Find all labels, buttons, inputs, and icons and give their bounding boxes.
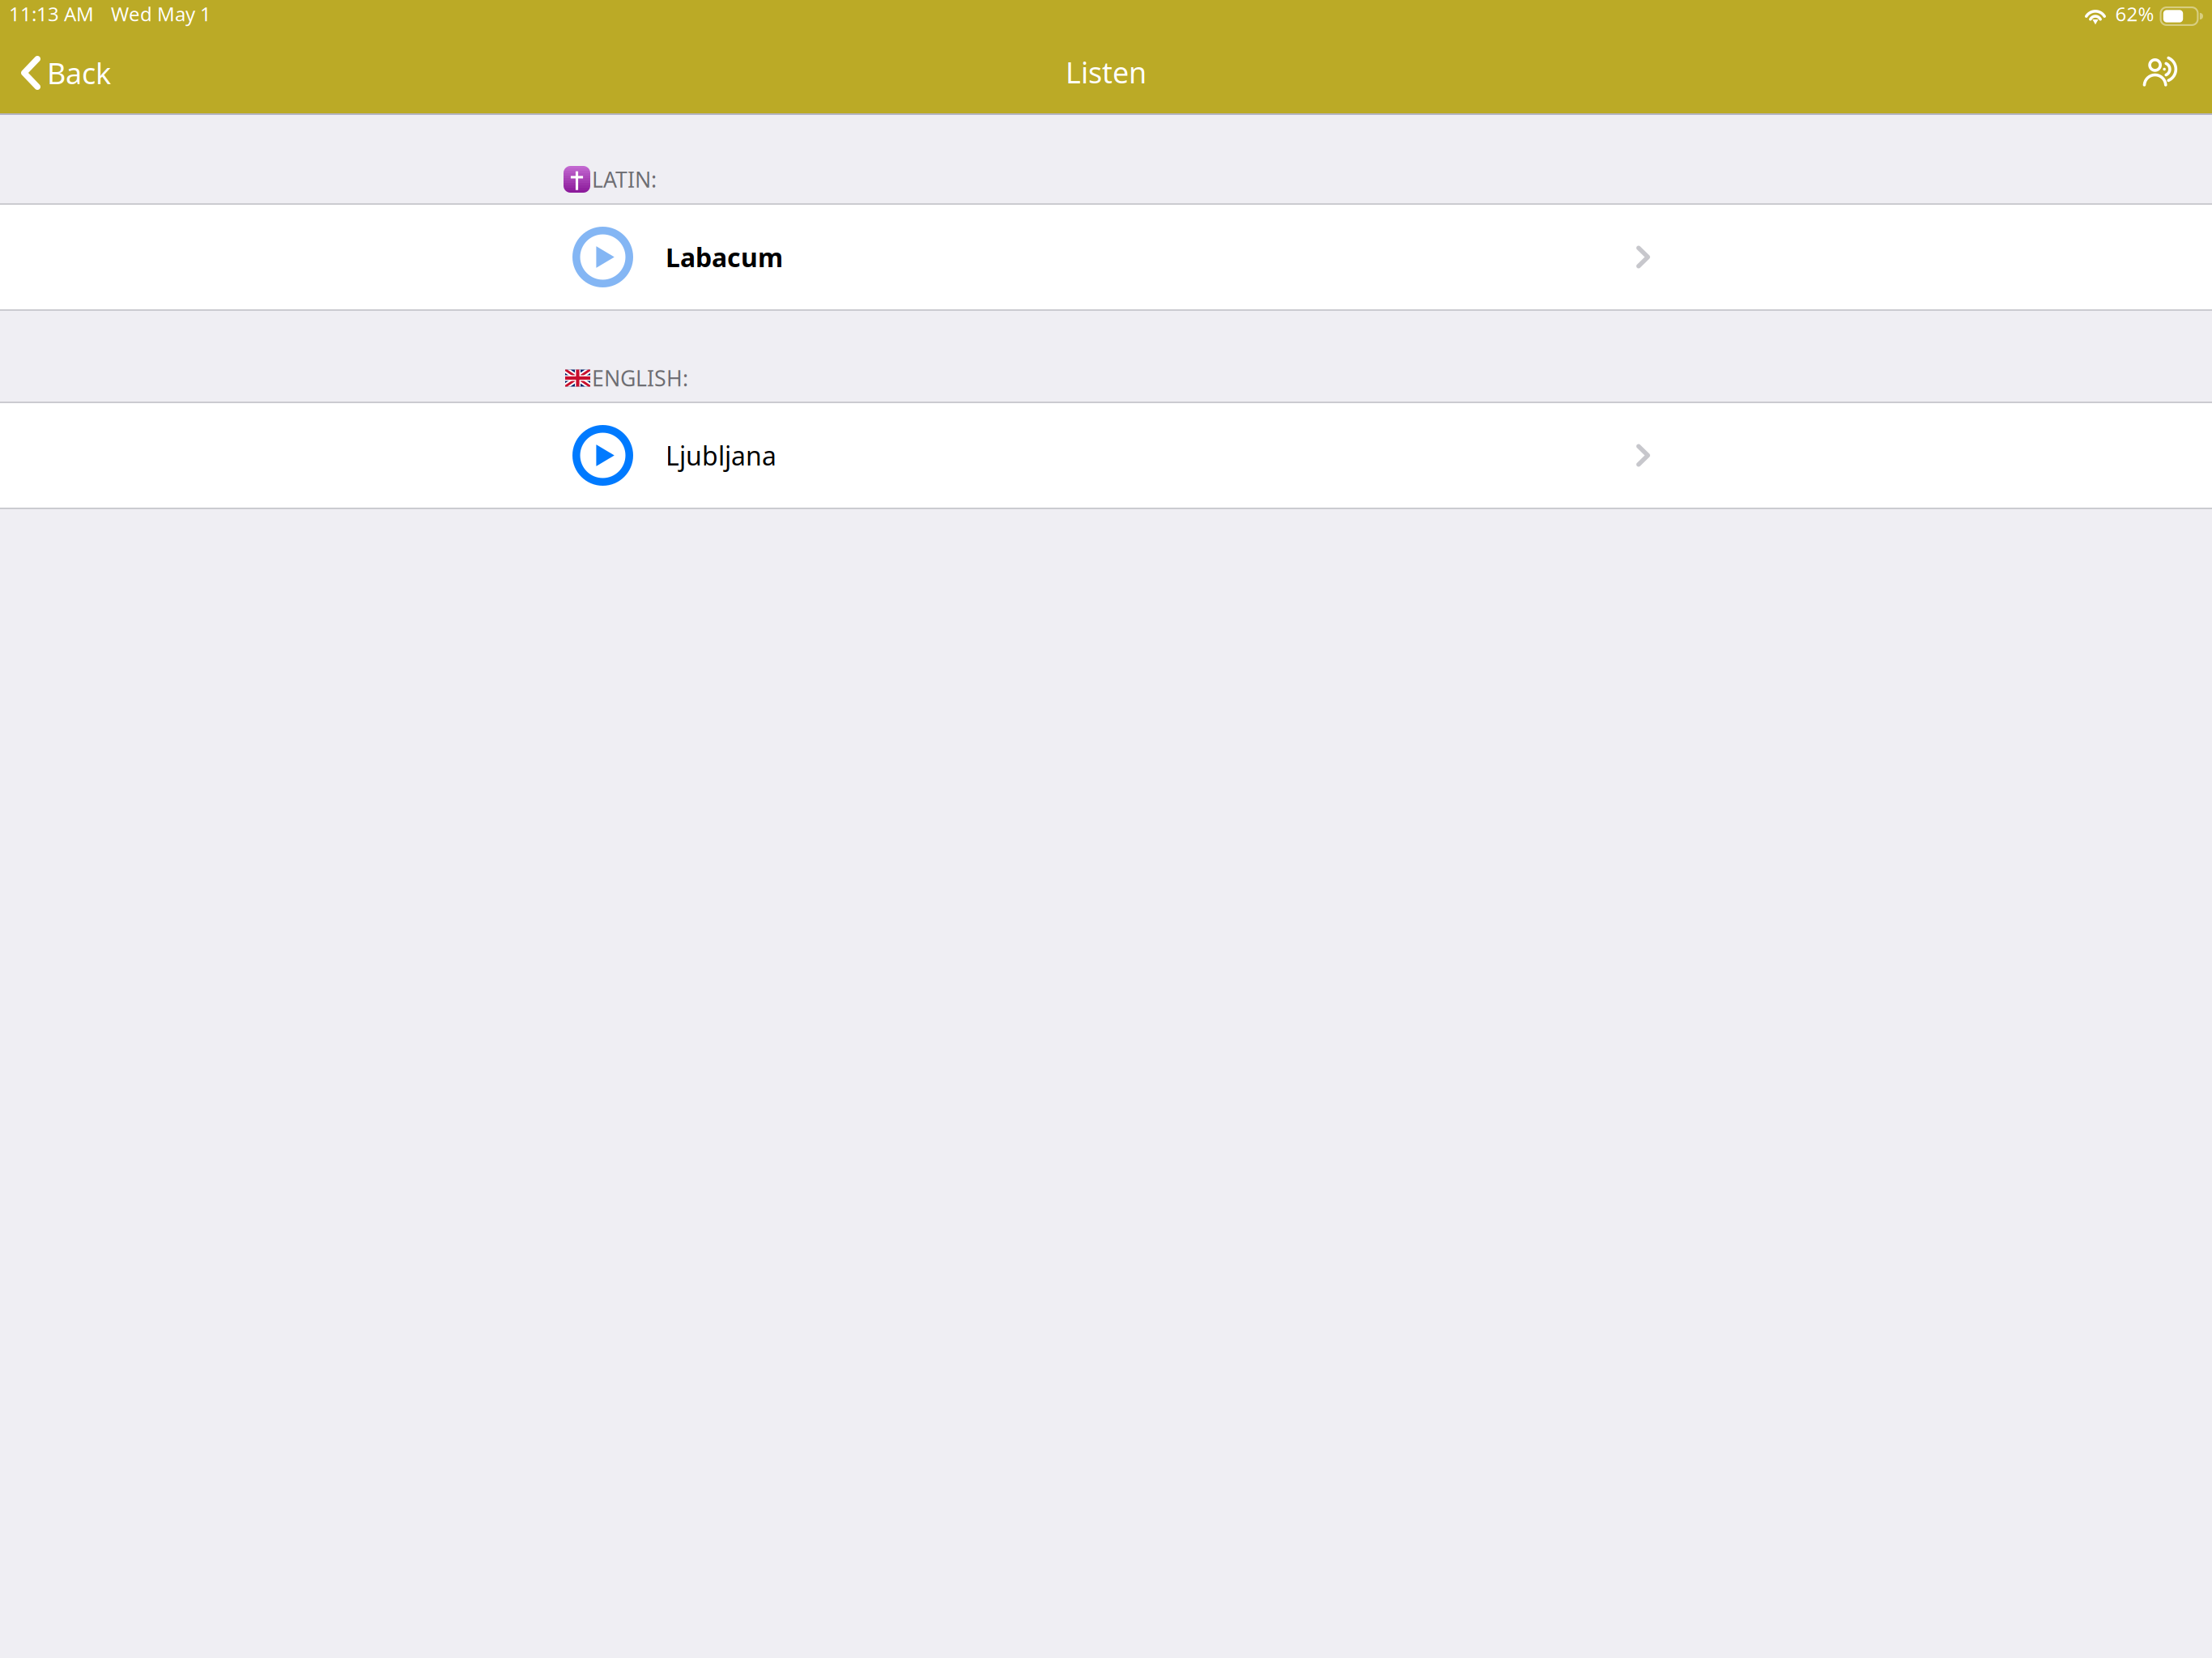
button[interactable]: Labacum bbox=[0, 205, 2212, 309]
button[interactable]: Speaker settings bbox=[2126, 50, 2212, 96]
staticText: LATIN: bbox=[592, 165, 657, 194]
staticText: Ljubljana bbox=[666, 438, 776, 473]
button[interactable]: Play Labacum bbox=[572, 227, 633, 287]
staticText: 62% bbox=[2115, 1, 2154, 27]
button[interactable]: Ljubljana bbox=[0, 403, 2212, 508]
staticText: ENGLISH: bbox=[592, 364, 688, 392]
staticText: Labacum bbox=[666, 240, 783, 274]
staticText: Wed May 1 bbox=[111, 1, 211, 27]
button[interactable]: Back bbox=[0, 45, 121, 101]
staticText: Back bbox=[47, 54, 111, 92]
staticText: Listen bbox=[1066, 53, 1146, 91]
button[interactable]: Play Ljubljana bbox=[572, 425, 633, 486]
staticText: 11:13 AM bbox=[9, 1, 94, 27]
